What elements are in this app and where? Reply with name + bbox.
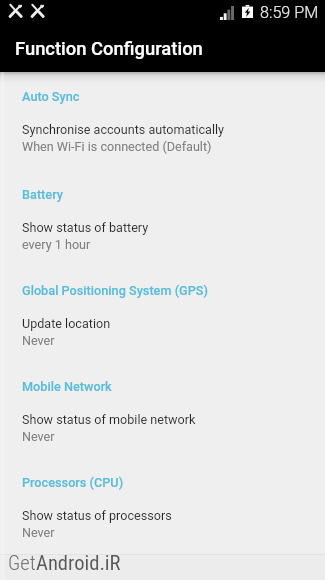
staticText: Mobile Network bbox=[22, 379, 112, 394]
staticText: Never bbox=[22, 429, 55, 444]
staticText: Android.iR bbox=[36, 551, 121, 575]
staticText: Never bbox=[22, 525, 55, 540]
staticText: every 1 hour bbox=[22, 237, 91, 252]
staticText: Battery bbox=[22, 187, 63, 202]
staticText: Never bbox=[22, 333, 55, 348]
other: Mobile signal bbox=[220, 6, 234, 20]
staticText: Update location bbox=[22, 316, 111, 331]
staticText: Global Positioning System (GPS) bbox=[22, 283, 208, 298]
staticText: Function Configuration bbox=[15, 38, 203, 60]
button[interactable]: Processors (CPU) bbox=[0, 475, 325, 537]
staticText: Show status of battery bbox=[22, 220, 149, 235]
staticText: Show status of processors bbox=[22, 508, 172, 523]
staticText: 8:59 PM bbox=[260, 3, 319, 22]
staticText: Synchronise accounts automatically bbox=[22, 122, 224, 137]
button[interactable]: Global Positioning System (GPS) bbox=[0, 283, 325, 345]
staticText: When Wi-Fi is connected (Default) bbox=[22, 139, 212, 154]
staticText: Get bbox=[8, 551, 36, 575]
staticText: Show status of mobile network bbox=[22, 412, 196, 427]
other: Tools notification bbox=[31, 4, 44, 17]
staticText: Processors (CPU) bbox=[22, 475, 124, 490]
other: Tools notification bbox=[9, 4, 22, 17]
staticText: Auto Sync bbox=[22, 89, 80, 104]
button[interactable]: Auto Sync bbox=[0, 89, 325, 151]
button[interactable]: Battery bbox=[0, 187, 325, 249]
button[interactable]: Mobile Network bbox=[0, 379, 325, 441]
